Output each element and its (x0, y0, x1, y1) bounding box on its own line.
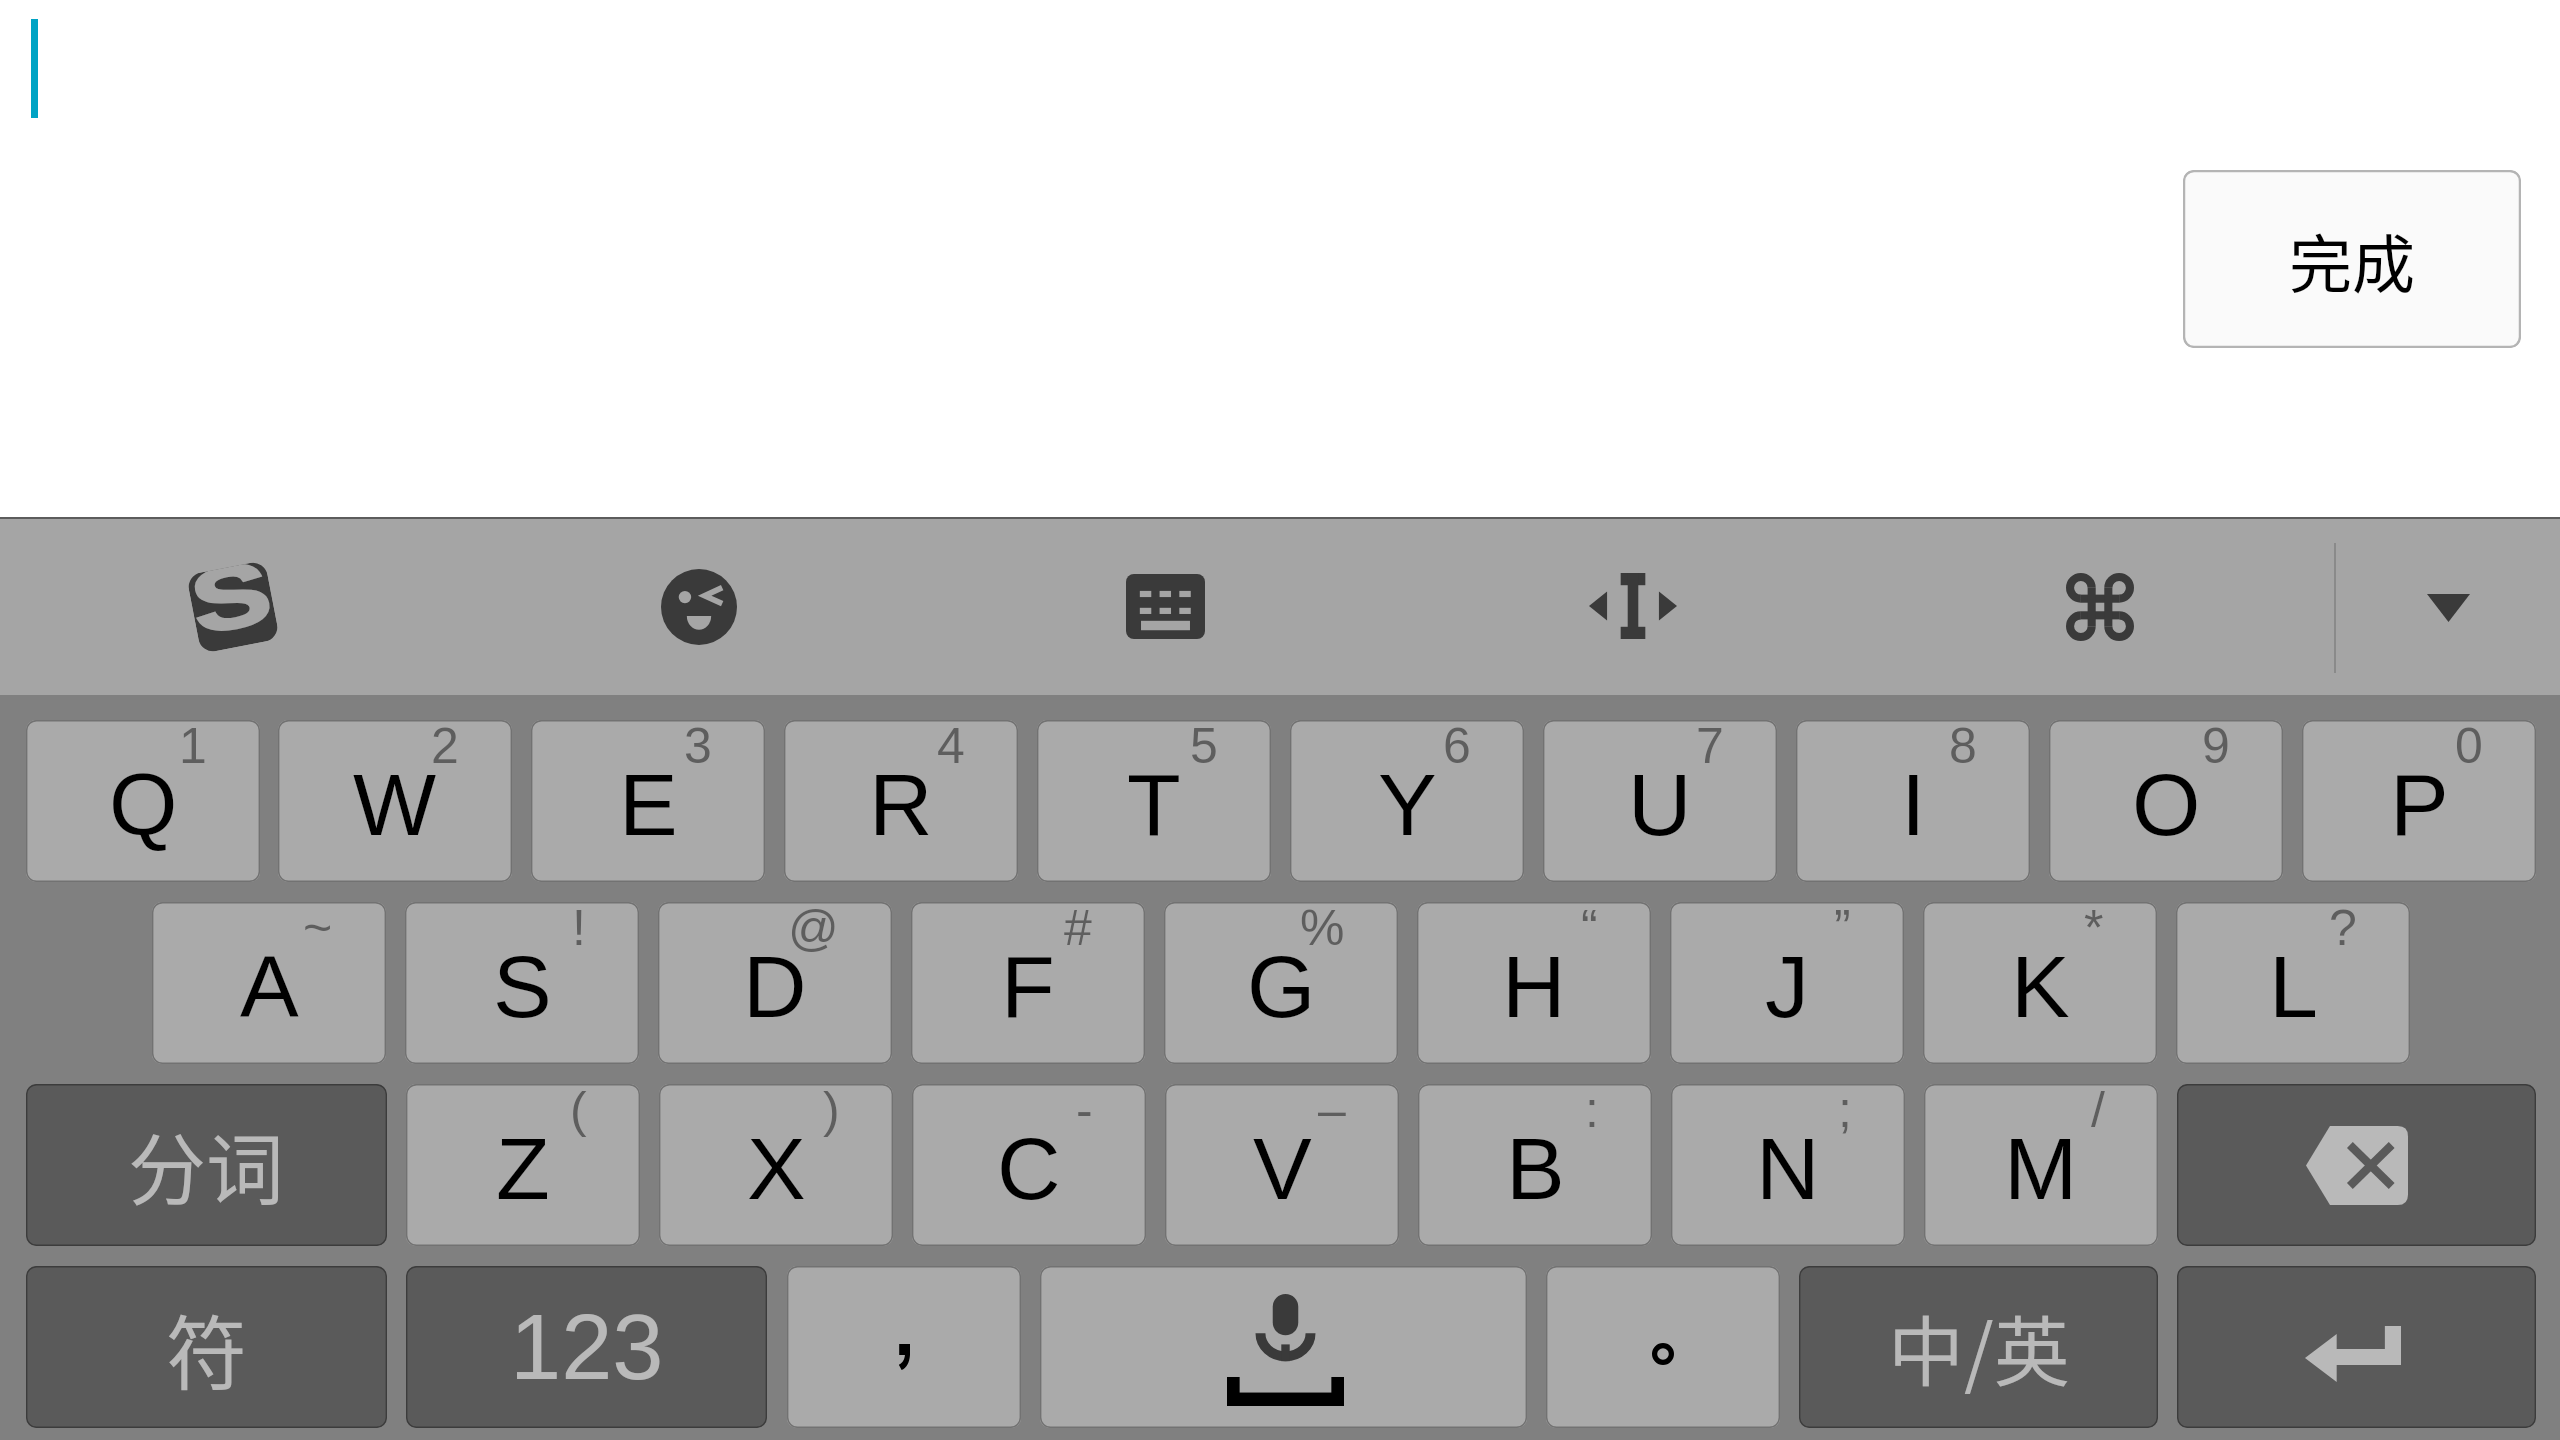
button[interactable]: 。 (1546, 1266, 1780, 1428)
staticText: Y (1378, 755, 1437, 853)
button[interactable]: 空格 (1040, 1266, 1527, 1428)
staticText: / (2091, 1084, 2105, 1138)
button[interactable]: 中/英 (1799, 1266, 2158, 1428)
button[interactable]: H (1417, 902, 1651, 1064)
button[interactable]: L (2176, 902, 2410, 1064)
staticText: 3 (684, 720, 712, 774)
button[interactable]: N (1671, 1084, 1905, 1246)
button[interactable]: C (912, 1084, 1146, 1246)
button[interactable]: D (658, 902, 892, 1064)
staticText: 中/英 (1888, 1292, 2070, 1402)
button[interactable]: U (1543, 720, 1777, 882)
staticText: 6 (1443, 720, 1471, 774)
staticText: ) (823, 1084, 840, 1138)
staticText: H (1502, 937, 1566, 1035)
button[interactable]: W (278, 720, 512, 882)
staticText: * (2084, 902, 2104, 956)
staticText: A (240, 937, 299, 1035)
staticText: 符 (166, 1289, 248, 1406)
button[interactable]: G (1164, 902, 1398, 1064)
staticText: 完成 (2289, 214, 2415, 305)
staticText: 123 (510, 1296, 664, 1399)
staticText: 9 (2202, 720, 2230, 774)
staticText: G (1247, 937, 1316, 1035)
staticText: - (1076, 1084, 1093, 1138)
button[interactable]: X (659, 1084, 893, 1246)
staticText: C (997, 1119, 1061, 1217)
button[interactable]: O (2049, 720, 2283, 882)
staticText: ( (570, 1084, 587, 1138)
button[interactable]: V (1165, 1084, 1399, 1246)
staticText: 8 (1949, 720, 1977, 774)
button[interactable]: K (1923, 902, 2157, 1064)
button[interactable]: T (1037, 720, 1271, 882)
staticText: O (2132, 755, 2201, 853)
button[interactable]: Y (1290, 720, 1524, 882)
button[interactable]: I (1796, 720, 2030, 882)
staticText: 2 (431, 720, 459, 774)
staticText: % (1300, 902, 1345, 956)
staticText: J (1765, 937, 1809, 1035)
staticText: S (493, 937, 552, 1035)
staticText: # (1064, 902, 1092, 956)
button[interactable]: 符 (26, 1266, 387, 1428)
staticText: 5 (1190, 720, 1218, 774)
button[interactable]: 收起键盘 (2427, 594, 2470, 622)
staticText: R (869, 755, 933, 853)
button[interactable]: ， (787, 1266, 1021, 1428)
staticText: U (1628, 755, 1692, 853)
staticText: ; (1838, 1084, 1852, 1138)
staticText: I (1901, 755, 1926, 853)
button[interactable]: A (152, 902, 386, 1064)
staticText: ! (572, 902, 586, 956)
staticText: 4 (937, 720, 965, 774)
button[interactable]: P (2302, 720, 2536, 882)
staticText: P (2390, 755, 2449, 853)
staticText: ” (1834, 902, 1851, 956)
staticText: : (1585, 1084, 1599, 1138)
button[interactable]: 123 (406, 1266, 767, 1428)
button[interactable]: R (784, 720, 1018, 882)
button[interactable]: J (1670, 902, 1904, 1064)
button[interactable]: B (1418, 1084, 1652, 1246)
staticText: D (743, 937, 807, 1035)
button[interactable]: 完成 (2183, 170, 2521, 348)
staticText: 1 (179, 720, 207, 774)
staticText: N (1756, 1119, 1820, 1217)
button[interactable]: 分词 (26, 1084, 387, 1246)
staticText: ? (2329, 902, 2357, 956)
staticText: @ (788, 902, 839, 956)
button[interactable]: 移动光标 (1589, 573, 1677, 639)
button[interactable]: S (405, 902, 639, 1064)
staticText: 7 (1696, 720, 1724, 774)
button[interactable]: M (1924, 1084, 2158, 1246)
staticText: 0 (2455, 720, 2483, 774)
staticText: – (1318, 1084, 1346, 1138)
button[interactable]: 键盘布局 (1126, 574, 1205, 639)
staticText: L (2269, 937, 2318, 1035)
button[interactable]: Z (406, 1084, 640, 1246)
button[interactable]: Backspace (2177, 1084, 2536, 1246)
button[interactable]: 搜狗输入法 (182, 556, 284, 658)
staticText: Q (109, 755, 178, 853)
staticText: T (1127, 755, 1181, 853)
staticText: M (2004, 1119, 2078, 1217)
staticText: S (187, 560, 277, 639)
staticText: F (1001, 937, 1055, 1035)
button[interactable]: Enter (2177, 1266, 2536, 1428)
button[interactable]: 表情 (661, 569, 737, 645)
staticText: Z (496, 1119, 550, 1217)
staticText: ~ (303, 902, 333, 956)
staticText: K (2011, 937, 2070, 1035)
staticText: V (1253, 1119, 1312, 1217)
button[interactable]: F (911, 902, 1145, 1064)
button[interactable]: 快捷短语 (2066, 573, 2134, 641)
staticText: 分词 (128, 1109, 285, 1222)
staticText: X (747, 1119, 806, 1217)
staticText: E (619, 755, 678, 853)
button[interactable]: Q (26, 720, 260, 882)
button[interactable]: E (531, 720, 765, 882)
staticText: W (353, 755, 437, 853)
staticText: “ (1581, 902, 1598, 956)
staticText: B (1506, 1119, 1565, 1217)
